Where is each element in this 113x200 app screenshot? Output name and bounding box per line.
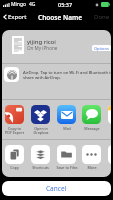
staticText: Open in Dropbox	[33, 126, 49, 136]
button[interactable]	[108, 145, 111, 164]
button[interactable]	[82, 105, 101, 124]
staticText: Copy	[10, 165, 19, 170]
staticText: Cancel	[46, 184, 67, 193]
staticText: Copy to PDF Expert	[5, 126, 24, 136]
staticText: More	[87, 165, 97, 170]
button[interactable]: AirDrop. Tap to turn on Wi-Fi and Blueto…	[2, 64, 111, 99]
button[interactable]	[108, 105, 111, 124]
staticText: yijing ricoi	[27, 38, 56, 46]
button[interactable]: Options	[92, 45, 111, 51]
staticText: Options	[94, 46, 109, 51]
button[interactable]	[5, 145, 24, 164]
staticText: On My iPhone	[27, 45, 58, 51]
button[interactable]	[5, 105, 24, 124]
button[interactable]	[57, 105, 76, 124]
staticText: AirDrop. Tap to turn on Wi-Fi and Blueto…	[23, 70, 111, 76]
staticText: 05:37	[58, 1, 73, 8]
staticText: Choose Name	[38, 13, 83, 22]
button[interactable]	[57, 145, 76, 164]
staticText: Shortcuts	[32, 165, 49, 170]
button[interactable]	[31, 105, 50, 124]
staticText: Export	[8, 13, 27, 21]
button[interactable]	[82, 145, 101, 164]
button[interactable]: Cancel	[2, 181, 111, 196]
button[interactable]: yijing ricoi	[2, 30, 111, 63]
staticText: Mail	[63, 126, 71, 131]
staticText: 4G	[29, 1, 36, 8]
staticText: Done	[94, 13, 110, 21]
button[interactable]	[31, 145, 50, 164]
staticText: Save to Files	[56, 165, 78, 170]
button[interactable]: Export	[2, 11, 28, 23]
staticText: Mingo	[11, 1, 27, 8]
button[interactable]: Done	[93, 11, 111, 23]
staticText: share with AirDrop.	[23, 75, 62, 81]
staticText: Message	[84, 126, 100, 131]
